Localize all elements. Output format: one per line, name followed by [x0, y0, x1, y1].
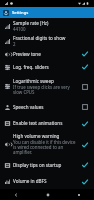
button[interactable]: Enable text animations [0, 114, 94, 132]
staticText: Preview tone [13, 51, 41, 57]
staticText: Log. freq. sliders [13, 64, 49, 70]
staticText: Logarithmic sweep [13, 78, 54, 84]
staticText: Display tips on startup [13, 162, 62, 168]
button[interactable]: Recent apps [63, 189, 94, 200]
button[interactable]: App icon [3, 10, 9, 16]
staticText: Enable text animations [13, 120, 63, 126]
button[interactable]: Logarithmic sweep [0, 73, 94, 99]
staticText: Sample rate (Hz) [13, 20, 49, 26]
button[interactable]: Preview tone [0, 47, 94, 60]
button[interactable]: Log. freq. sliders [0, 60, 94, 73]
button[interactable]: High volume warning [0, 132, 94, 156]
button[interactable]: Speech values [0, 99, 94, 114]
staticText: 44100 [13, 26, 26, 32]
staticText: Fractional digits to show [13, 35, 66, 41]
staticText: Volume in dBFS [13, 178, 47, 184]
button[interactable]: Volume in dBFS [0, 173, 94, 189]
staticText: Speech values [13, 104, 44, 110]
staticText: If true sweep clicks are very slow CPUS [13, 84, 79, 95]
staticText: Settings [12, 10, 29, 16]
staticText: 2 [13, 41, 16, 47]
button[interactable]: Sample rate (Hz) [0, 18, 94, 34]
staticText: You can disable it if this device is wir… [13, 139, 79, 155]
button[interactable]: Display tips on startup [0, 156, 94, 173]
button[interactable]: Fractional digits to show [0, 34, 94, 47]
button[interactable]: Home [32, 189, 63, 200]
button[interactable]: Back [0, 189, 32, 200]
staticText: High volume warning [13, 133, 60, 139]
